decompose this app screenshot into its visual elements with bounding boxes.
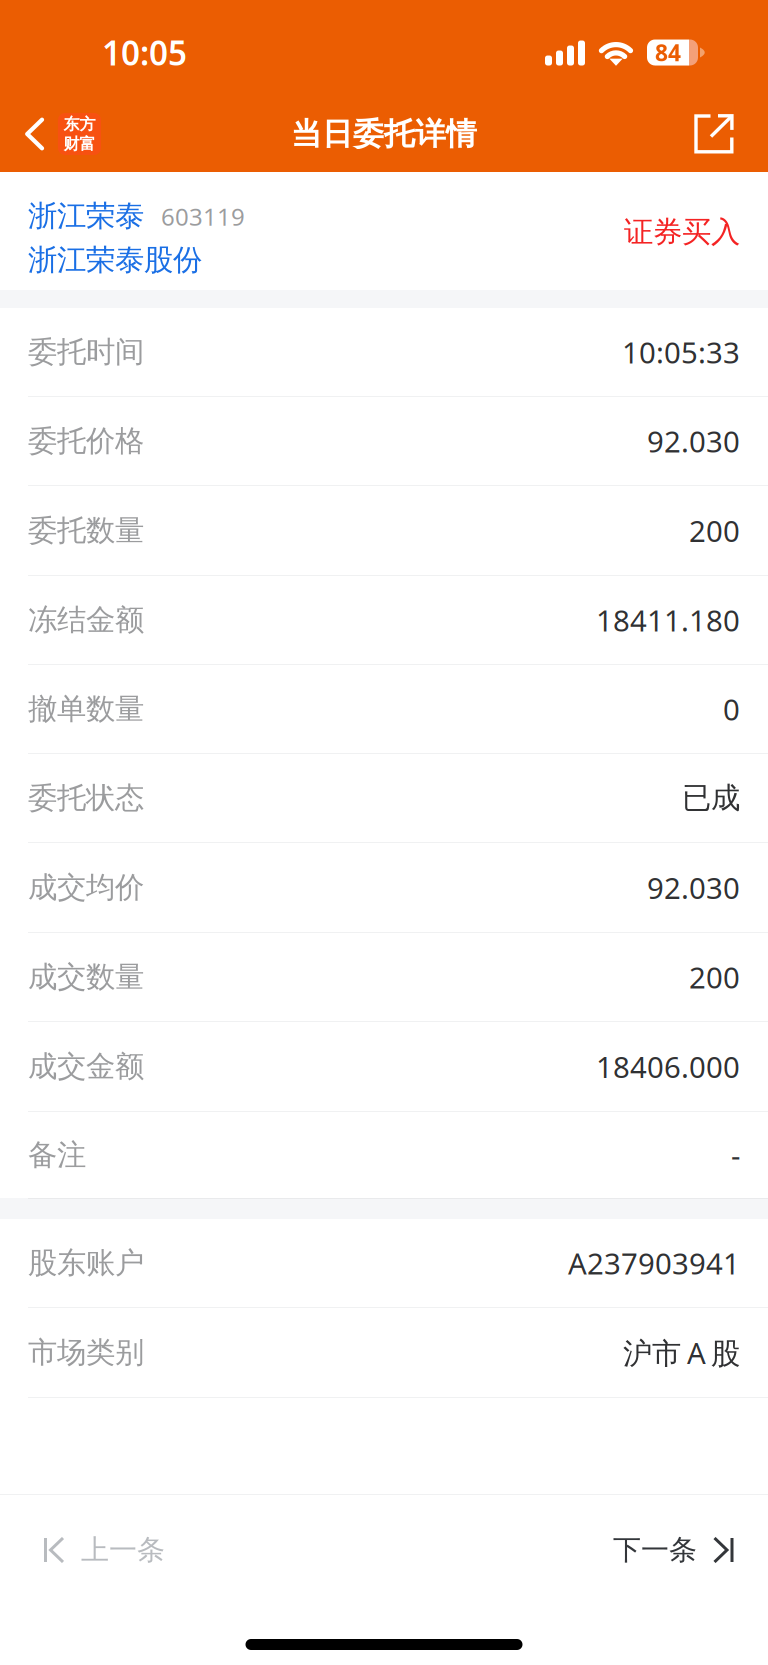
staticText: 东方 xyxy=(63,114,95,134)
staticText: 股东账户 xyxy=(28,1245,144,1281)
staticText: 委托状态 xyxy=(28,780,144,816)
staticText: A237903941 xyxy=(568,1243,740,1282)
staticText: 下一条 xyxy=(613,1533,697,1567)
button[interactable]: Back xyxy=(0,96,117,172)
staticText: 撤单数量 xyxy=(28,691,144,727)
staticText: 委托时间 xyxy=(28,334,144,370)
button[interactable]: 浙江荣泰 xyxy=(28,198,144,234)
staticText: 当日委托详情 xyxy=(291,115,477,153)
staticText: 冻结金额 xyxy=(28,602,144,638)
staticText: 委托数量 xyxy=(28,512,144,548)
staticText: - xyxy=(731,1135,740,1174)
staticText: 200 xyxy=(689,511,740,550)
staticText: 200 xyxy=(689,957,740,996)
staticText: 上一条 xyxy=(81,1533,165,1567)
staticText: 0 xyxy=(723,689,740,728)
staticText: 92.030 xyxy=(647,868,740,907)
staticText: 92.030 xyxy=(647,421,740,460)
staticText: 已成 xyxy=(682,780,740,816)
staticText: 成交数量 xyxy=(28,959,144,995)
staticText: 证券买入 xyxy=(624,214,740,250)
staticText: 浙江荣泰 xyxy=(28,198,144,234)
staticText: 84 xyxy=(655,37,681,67)
staticText: 603119 xyxy=(161,200,245,232)
staticText: 18406.000 xyxy=(596,1047,740,1086)
button[interactable]: Share xyxy=(670,96,768,172)
staticText: 浙江荣泰股份 xyxy=(28,242,202,278)
staticText: 10:05 xyxy=(102,30,187,75)
button[interactable]: 下一条 xyxy=(583,1495,768,1605)
staticText: 18411.180 xyxy=(596,600,740,639)
button[interactable]: 浙江荣泰股份 xyxy=(28,242,202,278)
button[interactable]: 上一条 xyxy=(0,1495,195,1605)
staticText: 市场类别 xyxy=(28,1334,144,1370)
staticText: 备注 xyxy=(28,1137,86,1173)
staticText: 沪市 A 股 xyxy=(623,1333,740,1372)
staticText: 委托价格 xyxy=(28,423,144,459)
staticText: 10:05:33 xyxy=(622,332,740,371)
staticText: 财富 xyxy=(63,134,95,154)
staticText: 成交均价 xyxy=(28,869,144,905)
staticText: 成交金额 xyxy=(28,1048,144,1084)
